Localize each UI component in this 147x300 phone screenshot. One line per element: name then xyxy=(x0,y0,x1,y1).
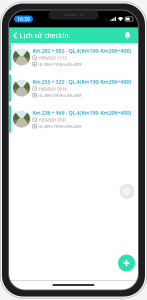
staticText: 16:39 xyxy=(17,15,30,23)
staticText: Lịch sử checkin xyxy=(19,31,68,40)
staticText: Km 236 + 469 - QL.4(Km190-Km206+400) xyxy=(32,109,131,116)
button[interactable]: Back xyxy=(9,27,19,43)
staticText: Km 282 + 992 - QL.4(Km190-Km206+400) xyxy=(32,47,131,54)
button[interactable]: Km 282 + 992 - QL.4(Km190-Km206+400) xyxy=(9,43,138,70)
button[interactable]: Add xyxy=(118,254,135,271)
staticText: QL.4(Km190-Km206+400) xyxy=(38,123,81,129)
button[interactable]: Km 236 + 469 - QL.4(Km190-Km206+400) xyxy=(9,105,138,132)
staticText: 19/03/2021 09:14 xyxy=(38,86,66,91)
staticText: QL.4(Km190-Km206+400) xyxy=(38,92,81,98)
button[interactable]: Notifications xyxy=(124,27,138,43)
staticText: 19/03/2021 07:47 xyxy=(38,117,66,122)
staticText: QL.4(Km190-Km206+400) xyxy=(38,61,81,67)
staticText: 19/03/2021 11:13 xyxy=(38,55,66,60)
button[interactable]: Km 255 + 322 - QL.4(Km190-Km206+400) xyxy=(9,74,138,101)
staticText: Km 255 + 322 - QL.4(Km190-Km206+400) xyxy=(32,78,131,85)
